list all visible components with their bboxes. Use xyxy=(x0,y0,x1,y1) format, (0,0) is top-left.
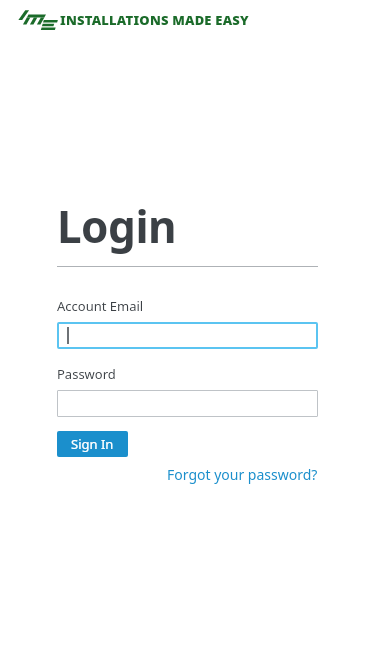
staticText: Login xyxy=(57,196,177,256)
staticText: Account Email xyxy=(57,297,144,315)
button[interactable]: Sign In xyxy=(57,431,128,457)
staticText: Sign In xyxy=(71,435,114,453)
staticText: INSTALLATIONS MADE EASY xyxy=(60,11,249,29)
button[interactable]: Forgot your password? xyxy=(167,465,318,484)
button[interactable] xyxy=(67,390,318,417)
staticText: Password xyxy=(57,365,116,383)
staticText: Forgot your password? xyxy=(167,465,318,484)
button[interactable]: INSTALLATIONS MADE EASY xyxy=(18,9,249,30)
button[interactable] xyxy=(67,322,318,349)
